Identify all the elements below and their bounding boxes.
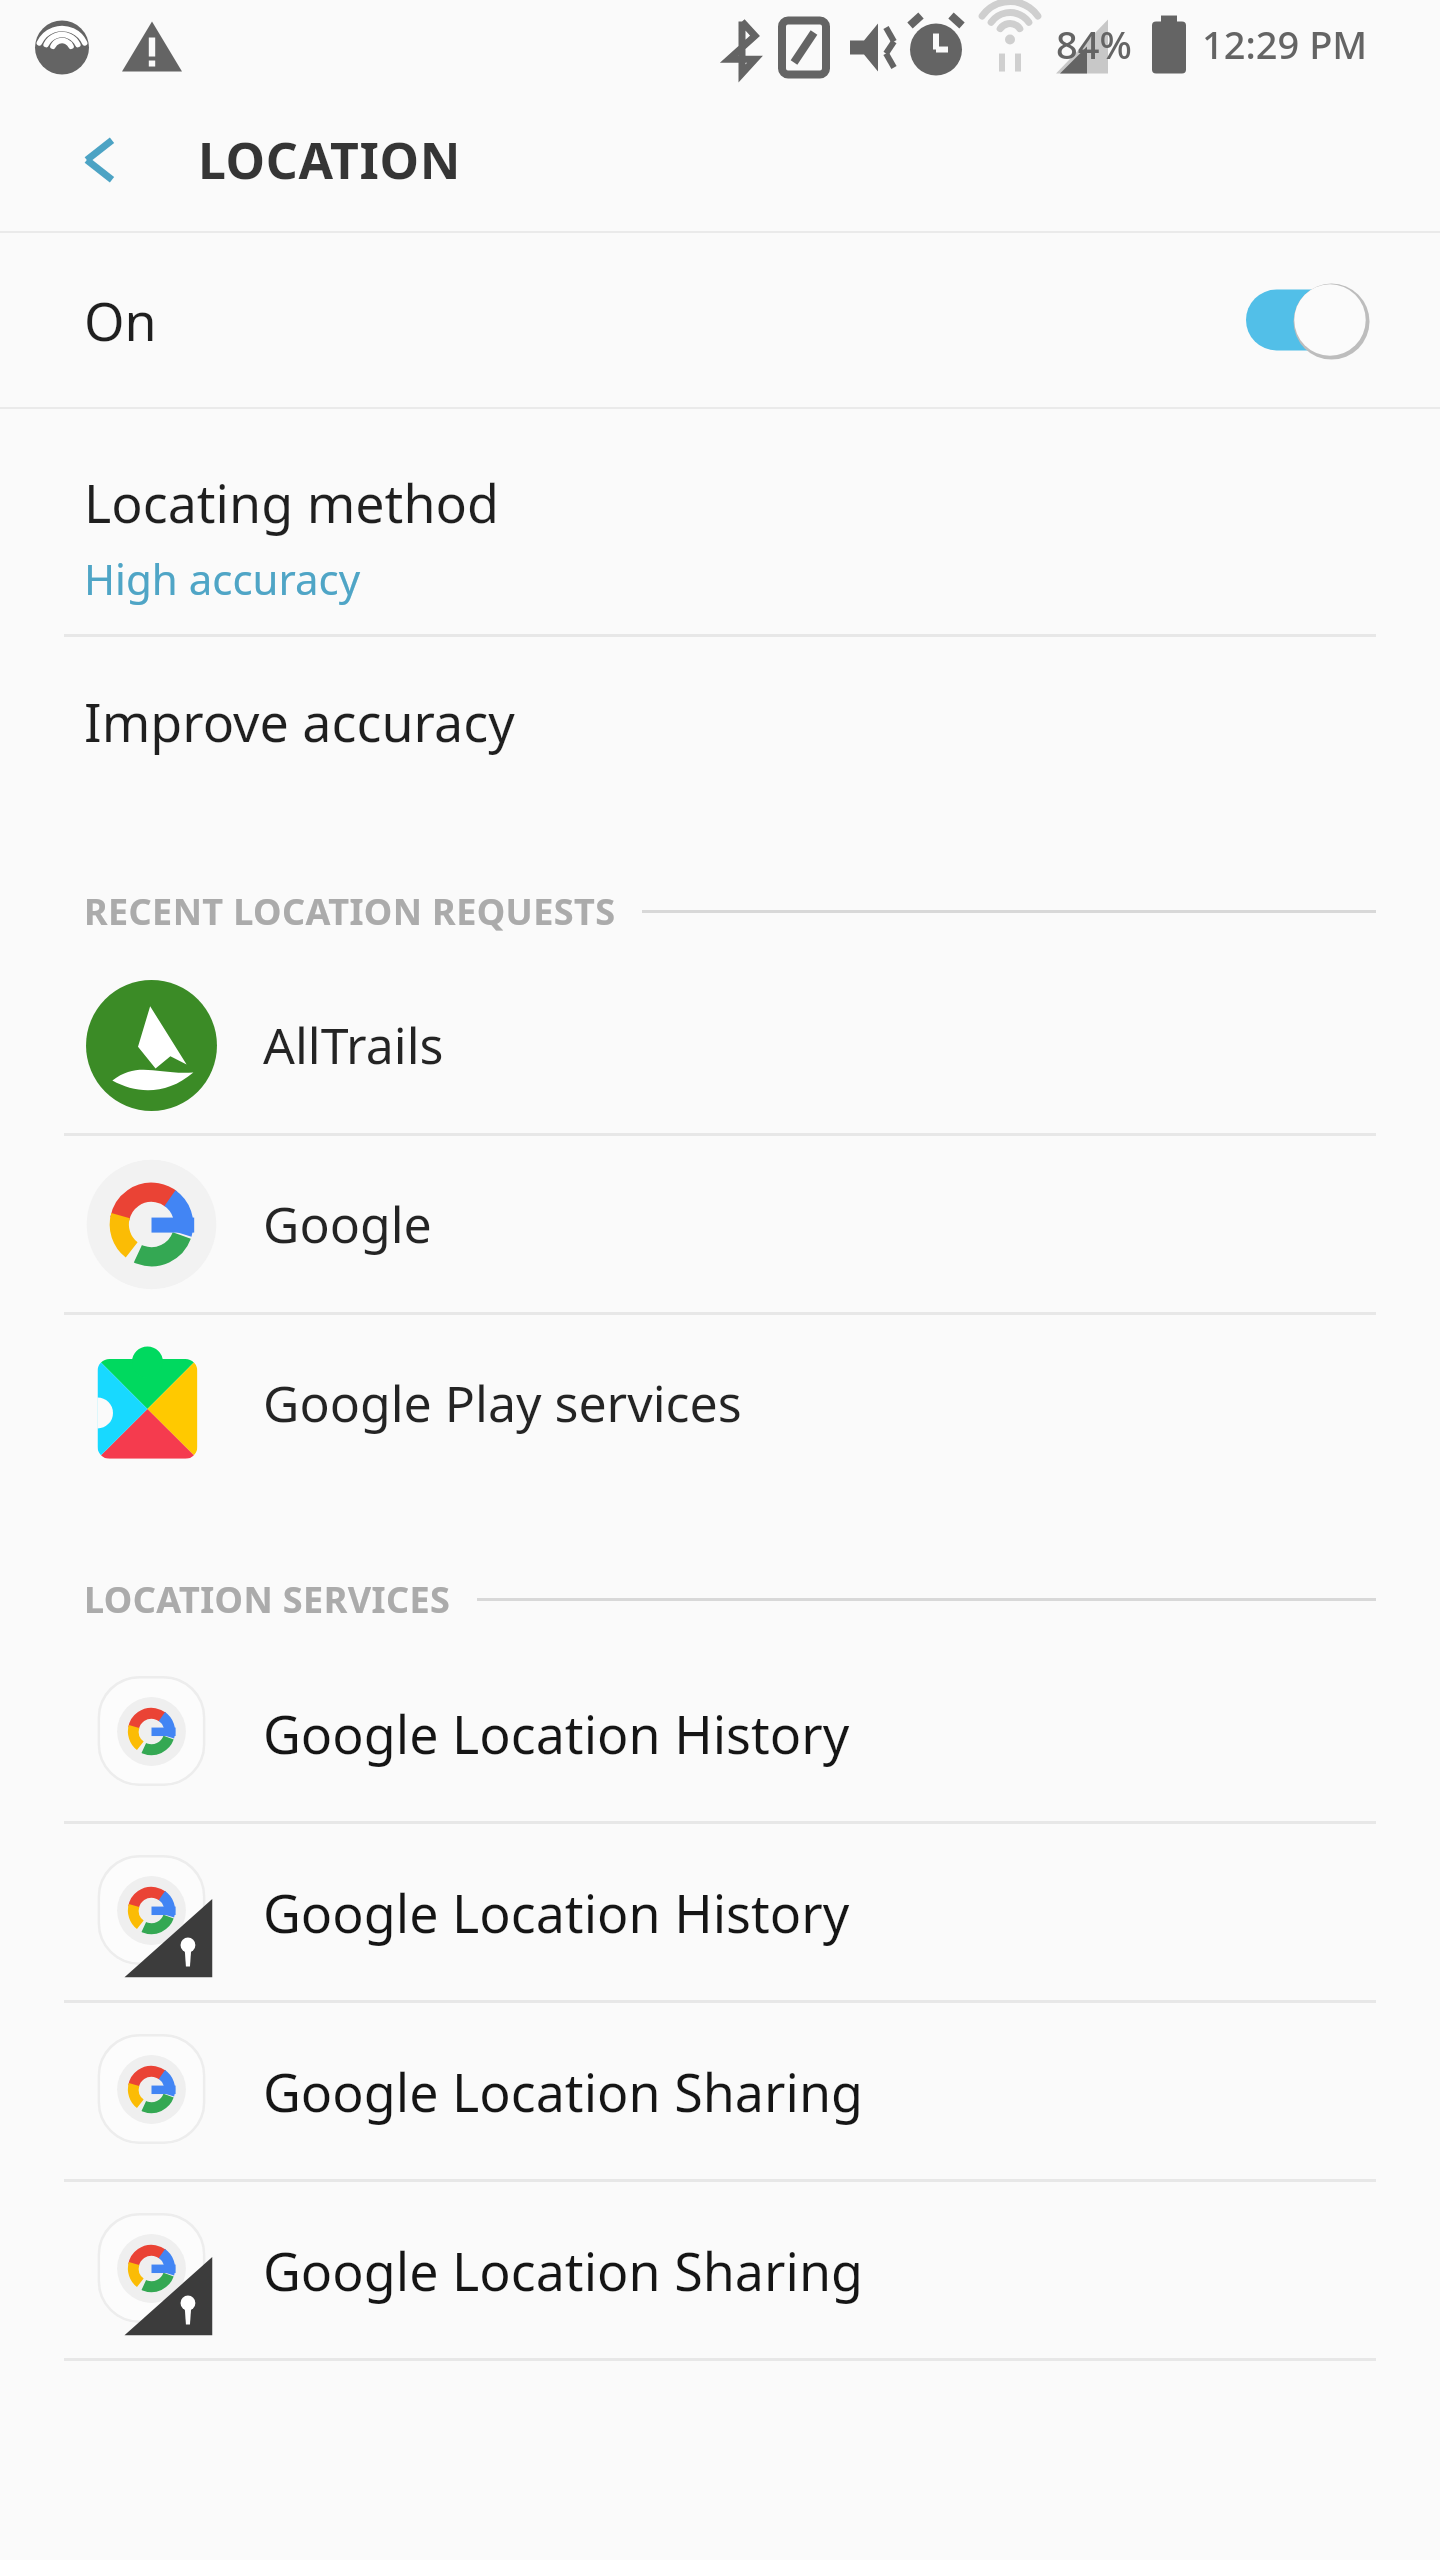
button[interactable]: Google Location History — [0, 1824, 1440, 2000]
staticText: Google Location History — [263, 1877, 850, 1948]
staticText: LOCATION SERVICES — [84, 1575, 451, 1624]
staticText: Google Location Sharing — [263, 2056, 864, 2127]
button[interactable]: Improve accuracy — [0, 637, 1440, 805]
staticText: Google Location Sharing — [263, 2235, 864, 2306]
staticText: Google Location History — [263, 1698, 850, 1769]
button[interactable]: Google Location Sharing — [0, 2003, 1440, 2179]
staticText: AllTrails — [263, 1011, 444, 1079]
staticText: Improve accuracy — [84, 686, 515, 757]
button[interactable]: On — [0, 233, 1440, 407]
staticText: 84% — [1056, 18, 1132, 70]
staticText: LOCATION — [198, 126, 461, 194]
button[interactable]: Locating method — [0, 409, 1440, 634]
button[interactable]: Google Location Sharing — [0, 2182, 1440, 2358]
button[interactable]: Google Location History — [0, 1645, 1440, 1821]
button[interactable]: AllTrails — [0, 957, 1440, 1133]
button[interactable]: Back — [40, 100, 160, 220]
staticText: High accuracy — [84, 550, 361, 607]
staticText: 12:29 PM — [1202, 18, 1368, 70]
staticText: On — [84, 285, 157, 356]
button[interactable]: Google — [0, 1136, 1440, 1312]
button[interactable]: Google Play services — [0, 1315, 1440, 1491]
staticText: Google Play services — [263, 1369, 742, 1437]
staticText: Google — [263, 1190, 432, 1258]
staticText: RECENT LOCATION REQUESTS — [84, 887, 616, 936]
staticText: Locating method — [84, 467, 499, 538]
